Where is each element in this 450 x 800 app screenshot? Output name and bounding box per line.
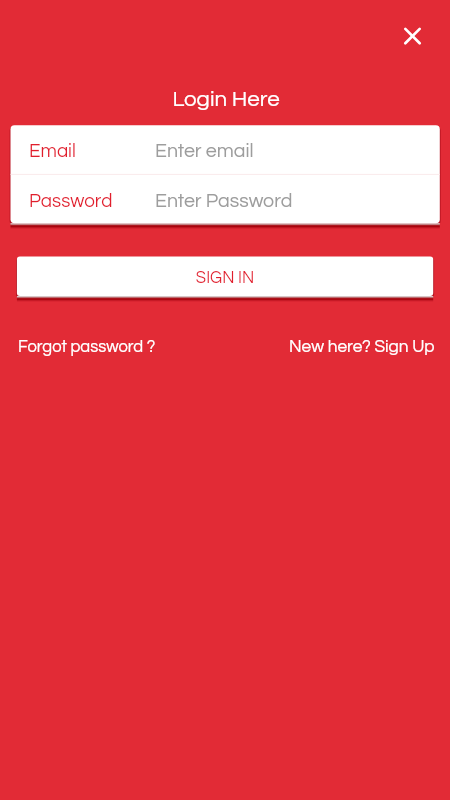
- button[interactable]: Forgot password ?: [18, 338, 156, 355]
- button[interactable]: New here? Sign Up: [289, 338, 435, 356]
- staticText: New here? Sign Up: [289, 338, 435, 356]
- button[interactable]: Password: [10, 174, 440, 223]
- staticText: Password: [29, 192, 113, 211]
- button[interactable]: Email: [10, 125, 440, 174]
- staticText: Forgot password ?: [18, 338, 156, 355]
- button[interactable]: SIGN IN: [17, 256, 433, 296]
- staticText: Enter Password: [155, 191, 293, 211]
- staticText: SIGN IN: [17, 269, 433, 286]
- staticText: Enter email: [155, 141, 254, 161]
- staticText: Email: [29, 142, 76, 161]
- staticText: Login Here: [1, 88, 450, 111]
- button[interactable]: Close: [395, 18, 430, 53]
